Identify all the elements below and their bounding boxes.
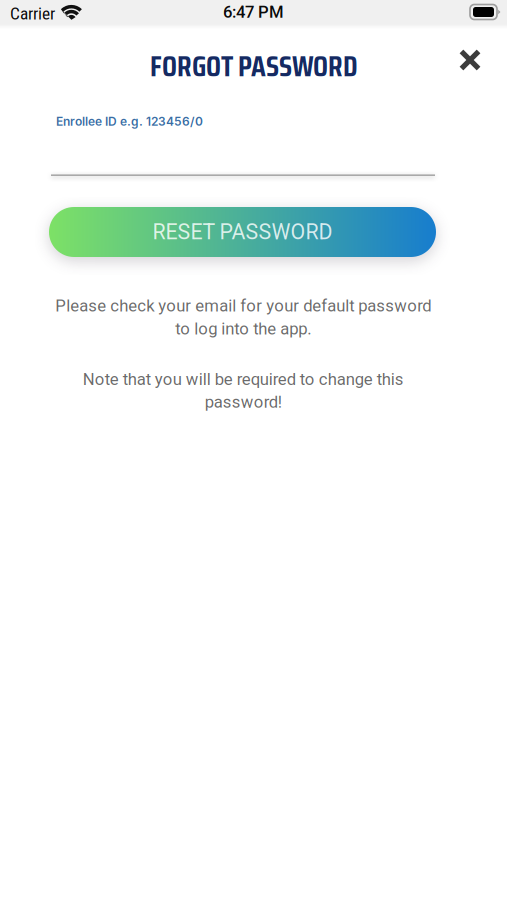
staticText: Enrollee ID e.g. 123456/0 xyxy=(56,114,203,128)
staticText: 6:47 PM xyxy=(223,2,284,22)
button[interactable]: RESET PASSWORD xyxy=(49,207,436,257)
staticText: RESET PASSWORD xyxy=(152,219,332,244)
staticText: Please check your email for your default… xyxy=(55,296,431,338)
button[interactable]: Close xyxy=(447,37,493,83)
staticText: FORGOT PASSWORD xyxy=(150,43,358,89)
staticText: Carrier xyxy=(10,3,55,24)
staticText: Note that you will be required to change… xyxy=(82,369,403,412)
